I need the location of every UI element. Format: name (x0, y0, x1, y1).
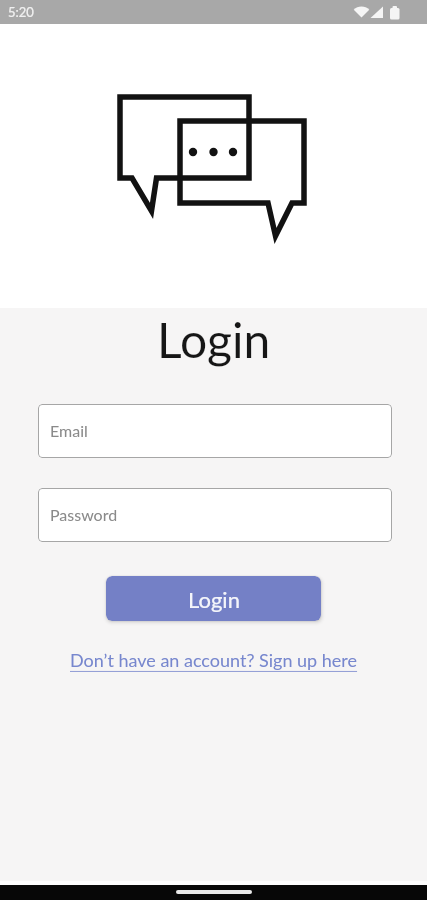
staticText: Login (188, 586, 240, 612)
staticText: Password (50, 505, 118, 524)
button[interactable]: Password (38, 488, 392, 542)
button[interactable]: Login (106, 576, 321, 621)
staticText: Email (50, 421, 88, 440)
staticText: Don’t have an account? Sign up here (70, 649, 358, 671)
button[interactable]: Email (38, 404, 392, 458)
button[interactable]: Don’t have an account? Sign up here (64, 646, 364, 674)
staticText: 5:20 (8, 4, 34, 20)
button[interactable] (176, 890, 252, 894)
staticText: Login (157, 311, 271, 369)
